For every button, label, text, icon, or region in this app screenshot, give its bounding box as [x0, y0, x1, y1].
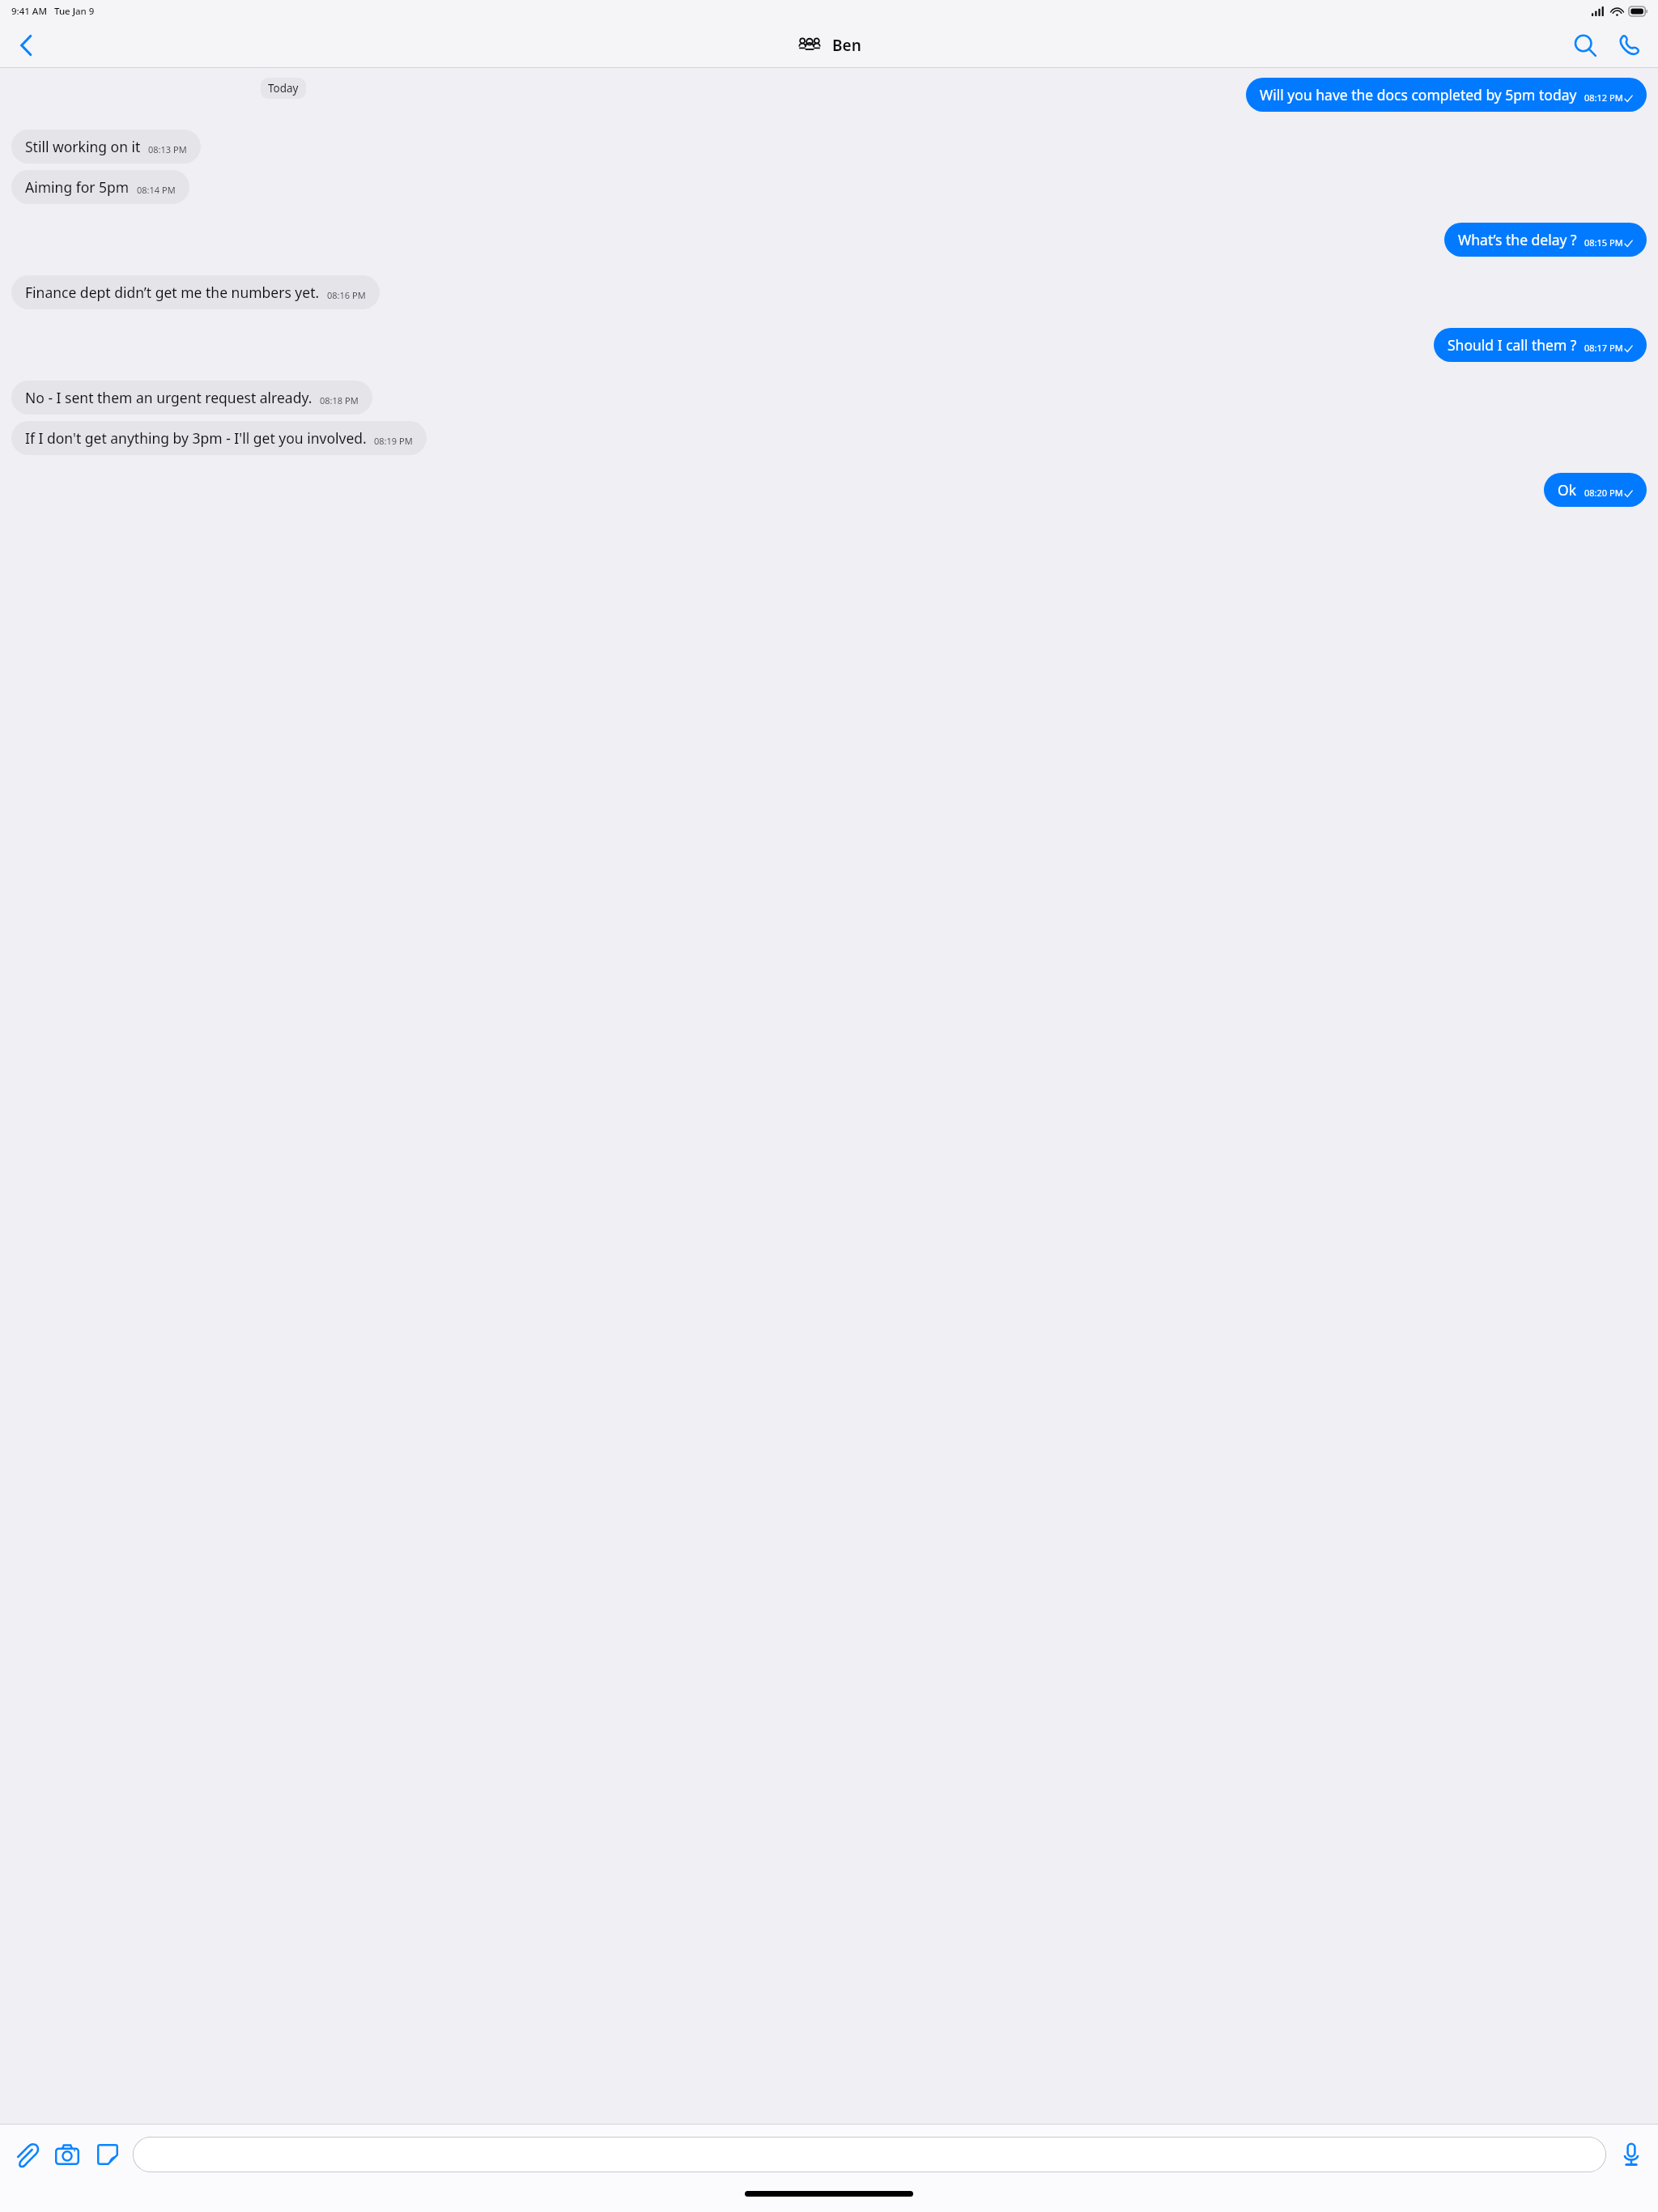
staticText: 08:18 PM	[320, 394, 359, 406]
button[interactable]: Still working on it	[11, 130, 201, 164]
button[interactable]	[133, 2137, 1606, 2172]
staticText: Finance dept didn’t get me the numbers y…	[25, 283, 320, 302]
staticText: No - I sent them an urgent request alrea…	[25, 388, 312, 407]
button[interactable]: Stickers	[87, 2134, 128, 2175]
staticText: Ben	[832, 35, 861, 56]
staticText: Today	[268, 81, 299, 96]
button[interactable]: No - I sent them an urgent request alrea…	[11, 381, 372, 415]
staticText: 08:15 PM	[1584, 236, 1623, 249]
staticText: Tue Jan 9	[54, 5, 95, 18]
staticText: 08:14 PM	[137, 184, 176, 196]
button[interactable]: Camera	[47, 2134, 87, 2175]
staticText: 08:17 PM	[1584, 342, 1623, 354]
button[interactable]: Back	[6, 26, 45, 65]
staticText: Still working on it	[25, 137, 141, 156]
staticText: 08:16 PM	[327, 289, 366, 301]
button[interactable]: Should I call them ?	[1434, 328, 1647, 362]
button[interactable]: Search	[1564, 24, 1606, 66]
staticText: What’s the delay ?	[1458, 230, 1577, 249]
staticText: 08:20 PM	[1584, 487, 1623, 499]
button[interactable]: Ben	[797, 35, 861, 56]
staticText: If I don't get anything by 3pm - I'll ge…	[25, 428, 367, 448]
staticText: 08:12 PM	[1584, 91, 1623, 104]
button[interactable]: Call	[1608, 24, 1650, 66]
staticText: Aiming for 5pm	[25, 177, 130, 197]
button[interactable]: Ok	[1544, 473, 1647, 507]
button[interactable]: Aiming for 5pm	[11, 170, 189, 204]
button[interactable]: What’s the delay ?	[1444, 223, 1647, 257]
staticText: Will you have the docs completed by 5pm …	[1260, 85, 1577, 104]
staticText: 08:19 PM	[374, 435, 413, 447]
button[interactable]: If I don't get anything by 3pm - I'll ge…	[11, 421, 427, 455]
staticText: Ok	[1558, 480, 1577, 500]
staticText: 08:13 PM	[148, 143, 187, 155]
button[interactable]: Finance dept didn’t get me the numbers y…	[11, 275, 380, 309]
staticText: 9:41 AM	[11, 5, 47, 18]
button[interactable]: Will you have the docs completed by 5pm …	[1246, 78, 1647, 112]
button[interactable]: Attach file	[6, 2134, 47, 2175]
staticText: Should I call them ?	[1448, 335, 1577, 355]
button[interactable]: Voice message	[1611, 2134, 1652, 2175]
